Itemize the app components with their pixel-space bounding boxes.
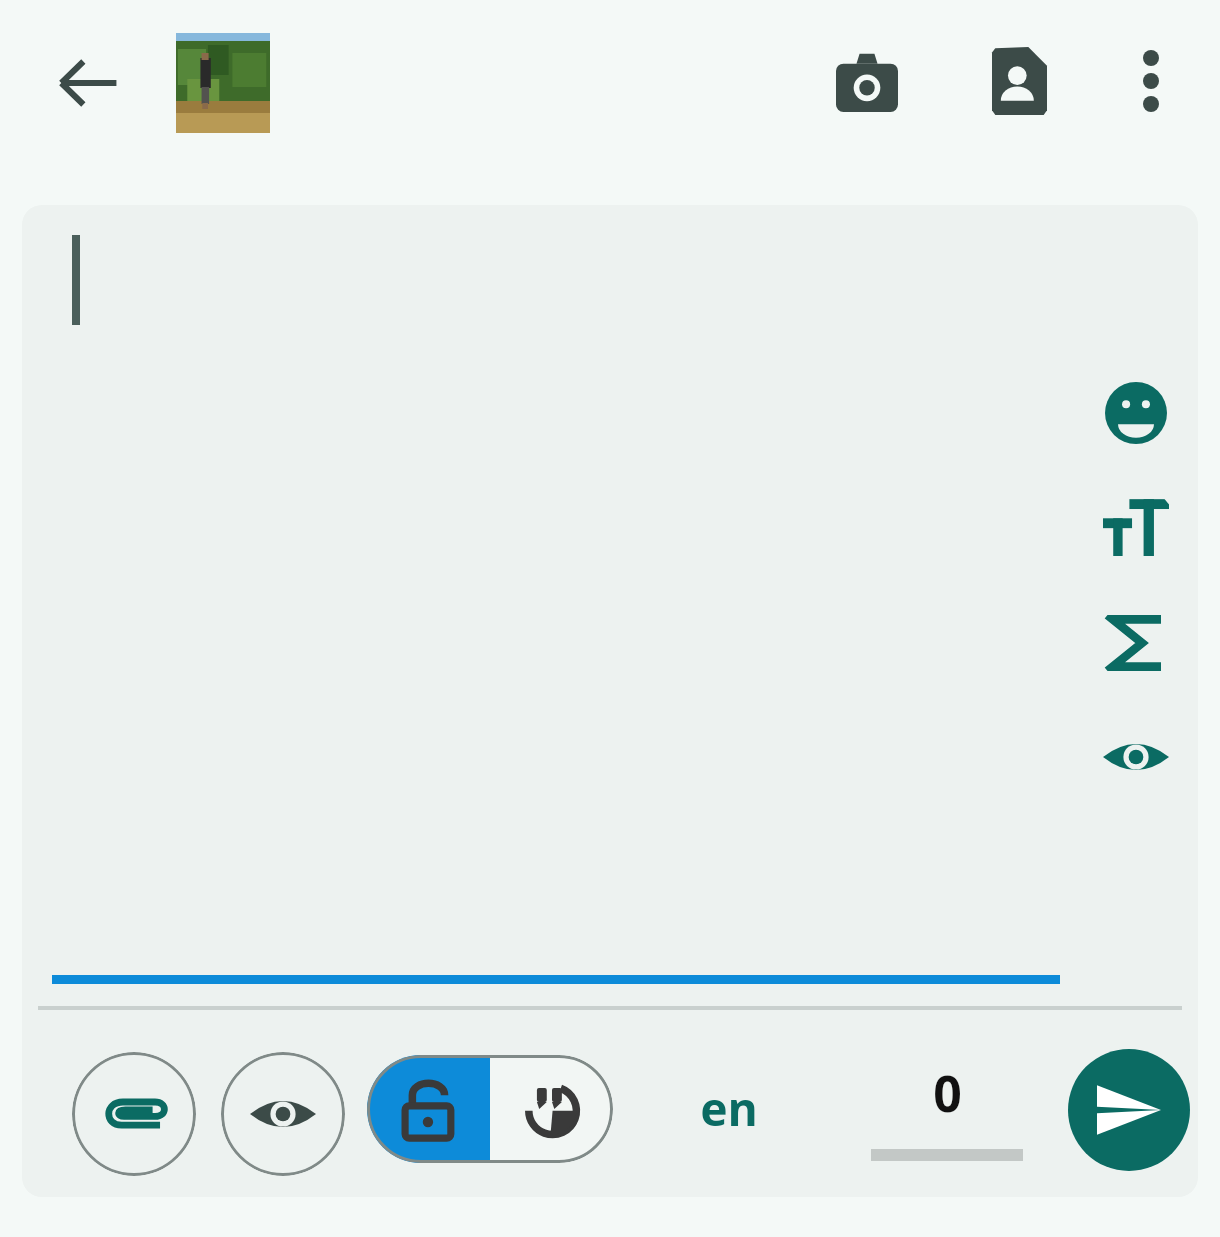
- button[interactable]: Preview: [1096, 717, 1176, 797]
- button[interactable]: Text size: [1096, 487, 1176, 567]
- button[interactable]: Attach contact: [971, 33, 1067, 129]
- staticText: en: [700, 1077, 758, 1140]
- button[interactable]: Encryption off: [367, 1055, 490, 1163]
- button[interactable]: Attach file: [72, 1052, 196, 1176]
- button[interactable]: Back: [40, 35, 136, 131]
- staticText: 0: [933, 1059, 962, 1127]
- button[interactable]: Preview message: [221, 1052, 345, 1176]
- button[interactable]: Character counter: [867, 1050, 1027, 1175]
- button[interactable]: Take photo: [819, 33, 915, 129]
- button[interactable]: Attached photo: [176, 33, 270, 133]
- button[interactable]: Translate: [490, 1055, 613, 1163]
- button[interactable]: Insert emoji: [1096, 373, 1176, 453]
- button[interactable]: Send: [1068, 1049, 1190, 1171]
- button[interactable]: en: [674, 1065, 784, 1151]
- button[interactable]: Insert symbol: [1096, 603, 1176, 683]
- button[interactable]: More options: [1103, 33, 1199, 129]
